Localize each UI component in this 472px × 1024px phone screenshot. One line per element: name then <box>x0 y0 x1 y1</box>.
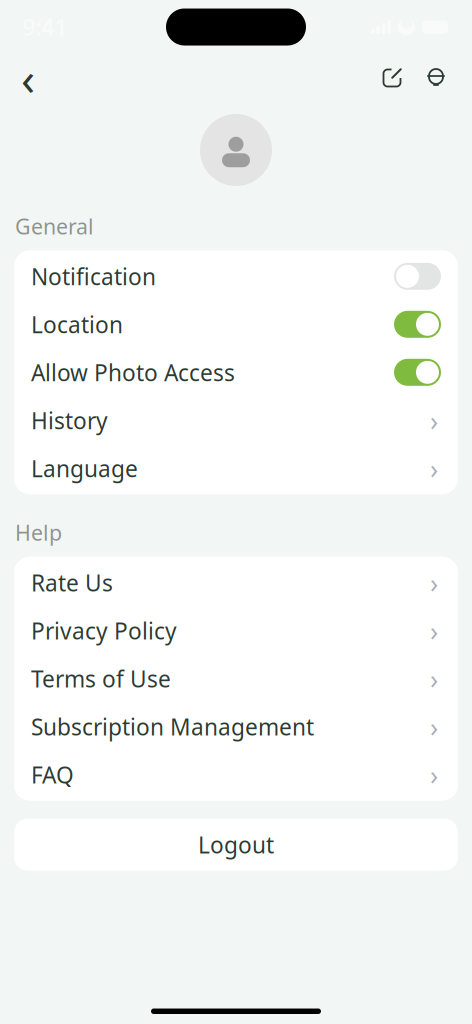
staticText: › <box>430 613 438 648</box>
staticText: ‹ <box>21 48 35 108</box>
staticText: Help <box>15 518 62 547</box>
staticText: General <box>15 212 94 240</box>
button[interactable]: Privacy Policy <box>14 607 458 655</box>
staticText: Rate Us <box>31 568 113 598</box>
staticText: Notification <box>31 261 156 291</box>
staticText: Allow Photo Access <box>31 357 235 387</box>
button[interactable]: Location <box>14 300 458 348</box>
staticText: Privacy Policy <box>31 616 177 646</box>
staticText: › <box>430 757 438 792</box>
staticText: Location <box>31 309 123 339</box>
staticText: History <box>31 405 108 435</box>
button[interactable]: Terms of Use <box>14 655 458 703</box>
button[interactable]: Notifications <box>414 56 458 100</box>
button[interactable]: Allow Photo Access <box>14 348 458 396</box>
staticText: Language <box>31 453 138 483</box>
staticText: Logout <box>198 830 274 860</box>
staticText: FAQ <box>31 760 74 790</box>
button[interactable]: Notification <box>14 252 458 300</box>
button[interactable]: FAQ <box>14 751 458 799</box>
button[interactable]: Edit <box>370 56 414 100</box>
staticText: › <box>430 403 438 438</box>
button[interactable]: Back <box>6 56 50 100</box>
staticText: › <box>430 565 438 600</box>
button[interactable]: Language <box>14 444 458 492</box>
staticText: › <box>430 451 438 486</box>
staticText: Terms of Use <box>31 664 171 694</box>
button[interactable]: Logout <box>14 819 458 871</box>
staticText: › <box>430 709 438 744</box>
staticText: › <box>430 661 438 696</box>
staticText: Subscription Management <box>31 712 314 742</box>
button[interactable]: Subscription Management <box>14 703 458 751</box>
button[interactable]: Rate Us <box>14 559 458 607</box>
button[interactable]: History <box>14 396 458 444</box>
